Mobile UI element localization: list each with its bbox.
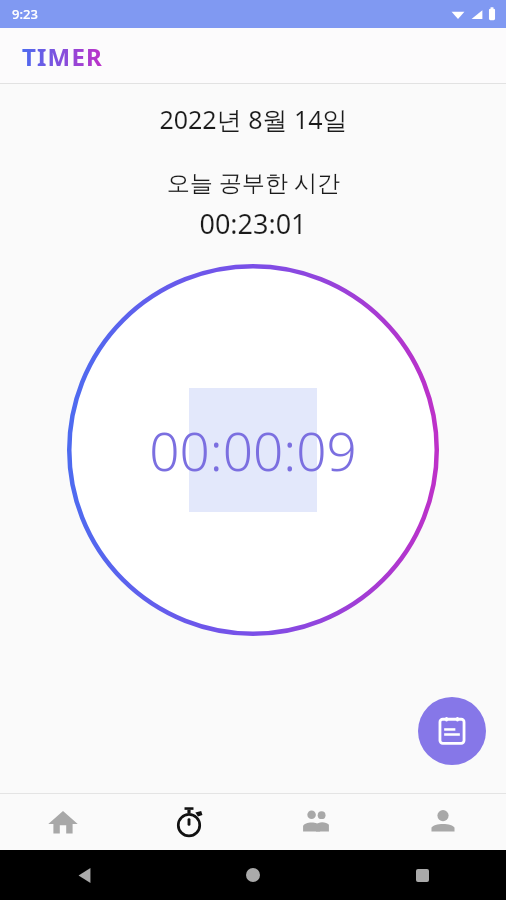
staticText: 00:00:09 <box>149 414 357 486</box>
staticText: 오늘 공부한 시간 <box>167 166 340 197</box>
button[interactable]: Profile <box>379 794 506 850</box>
button[interactable]: Timer <box>126 794 252 850</box>
button[interactable]: Home <box>236 858 270 892</box>
staticText: TIMER <box>22 40 103 73</box>
button[interactable]: Back <box>67 858 101 892</box>
button[interactable]: Friends <box>252 794 379 850</box>
button[interactable]: Home <box>0 794 126 850</box>
staticText: 2022년 8월 14일 <box>159 102 348 136</box>
staticText: 9:23 <box>12 5 38 23</box>
button[interactable]: 00:00:09 <box>67 264 439 636</box>
staticText: 00:23:01 <box>199 205 307 242</box>
button[interactable]: Recents <box>405 858 439 892</box>
button[interactable]: Calendar <box>418 697 486 765</box>
